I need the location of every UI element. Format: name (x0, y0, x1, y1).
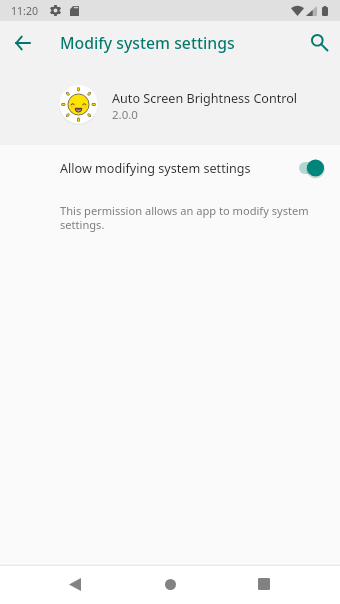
button[interactable]: Recent apps (244, 564, 284, 604)
button[interactable]: Search (299, 22, 339, 62)
staticText: Modify system settings (60, 32, 235, 54)
button[interactable]: Allow modifying system settings toggle, … (299, 155, 329, 181)
staticText: 2.0.0 (112, 107, 138, 123)
button[interactable]: Home (150, 564, 190, 604)
staticText: Auto Screen Brightness Control (112, 90, 298, 107)
staticText: This permission allows an app to modify … (60, 203, 312, 232)
button[interactable]: Navigate up (3, 23, 43, 63)
button[interactable]: Allow modifying system settings (0, 145, 340, 190)
staticText: Allow modifying system settings (60, 160, 251, 177)
button[interactable]: Back (55, 564, 95, 604)
staticText: 11:20 (11, 4, 39, 18)
